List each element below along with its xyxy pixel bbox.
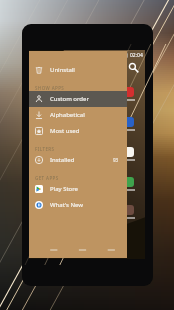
button[interactable]: Installed	[29, 152, 127, 168]
staticText: Installed	[50, 156, 75, 164]
staticText: Most used	[50, 127, 80, 135]
staticText: 93	[113, 157, 119, 163]
button[interactable]: Play Store	[29, 181, 127, 197]
staticText: Custom order	[50, 95, 89, 103]
staticText: Play Store	[50, 185, 78, 193]
staticText: SHOW APPS	[35, 85, 65, 91]
staticText: Uninstall	[50, 66, 75, 74]
button[interactable]: Search	[128, 62, 139, 73]
staticText: Alphabetical	[50, 111, 85, 119]
staticText: FILTERS	[35, 146, 55, 152]
staticText: GET APPS	[35, 175, 59, 181]
button[interactable]: Uninstall	[29, 62, 127, 78]
button[interactable]: What's New	[29, 197, 127, 213]
staticText: 02:04	[130, 52, 143, 59]
staticText: What's New	[50, 201, 84, 209]
button[interactable]: Most used	[29, 123, 127, 139]
button[interactable]: Custom order	[29, 91, 127, 107]
button[interactable]: Alphabetical	[29, 107, 127, 123]
